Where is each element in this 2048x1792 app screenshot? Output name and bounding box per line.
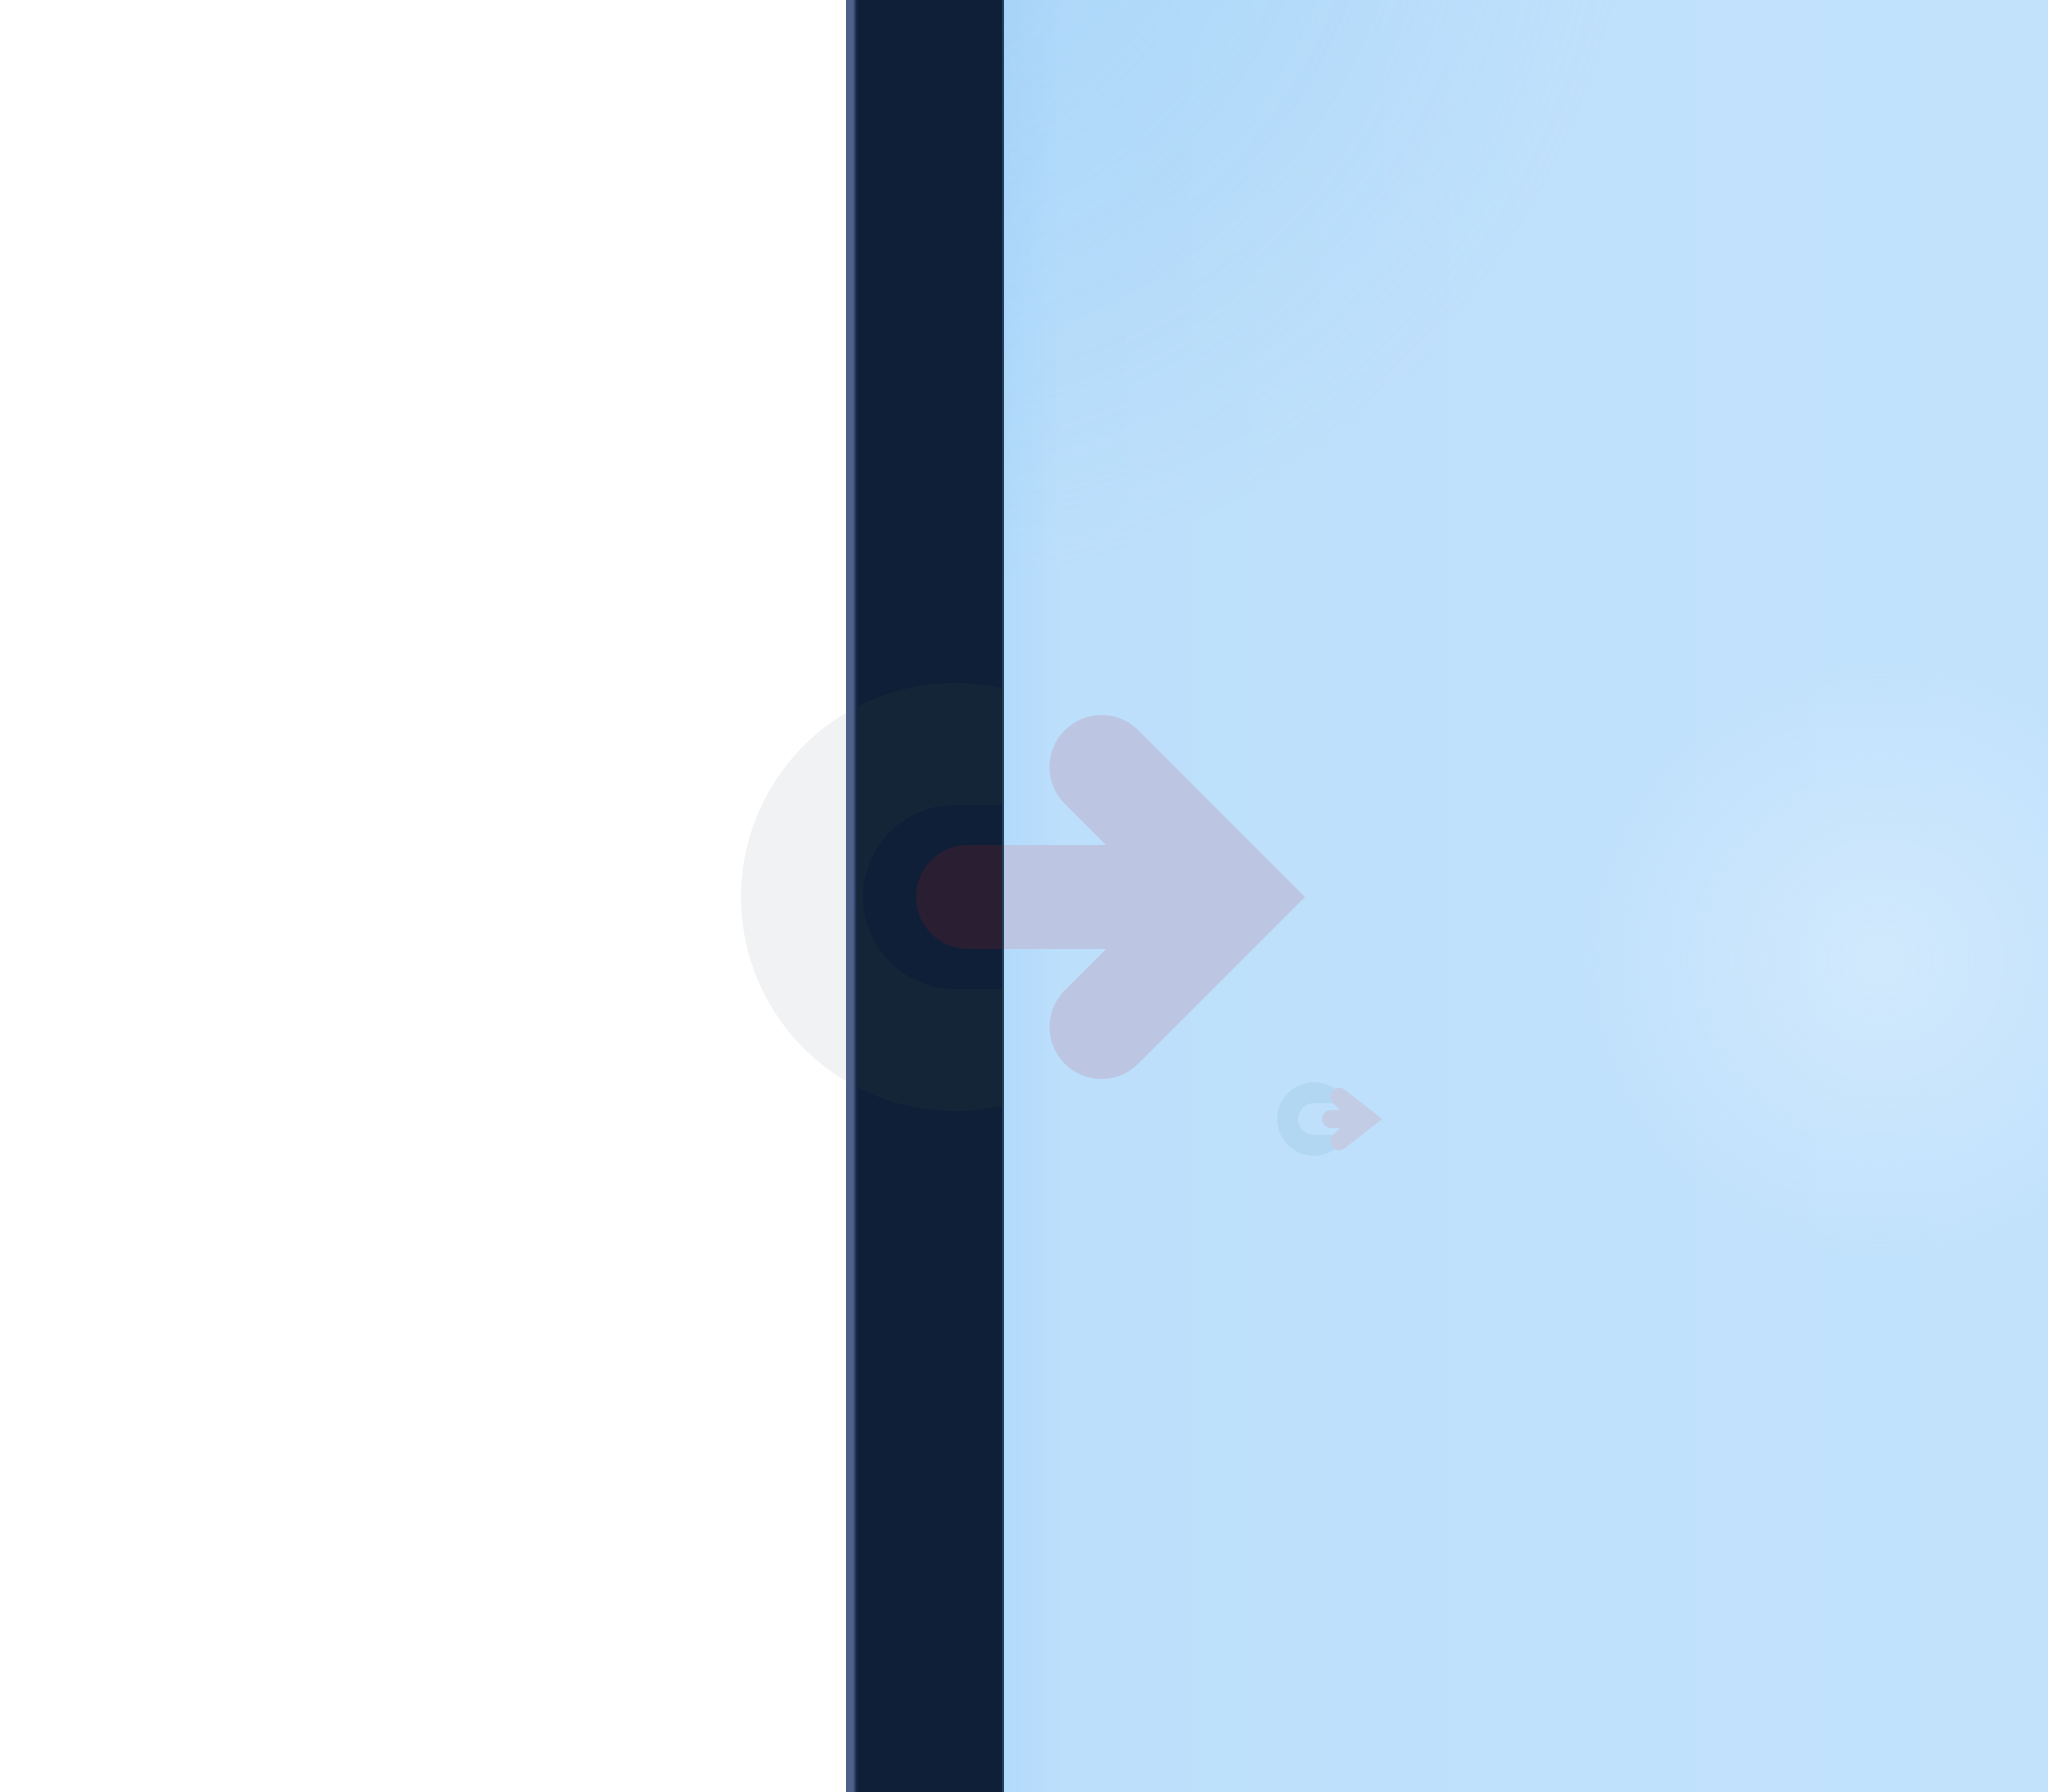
button[interactable]: Continue [0, 0, 2048, 1792]
button[interactable]: Brand mark [0, 0, 2048, 1792]
